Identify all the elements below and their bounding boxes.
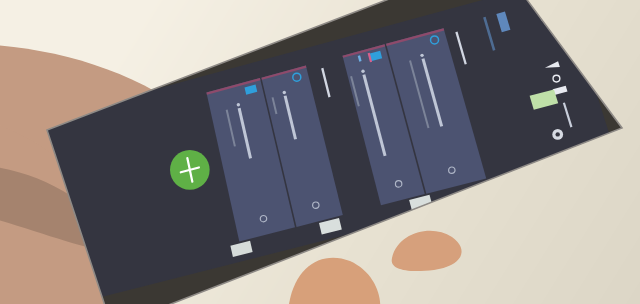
button[interactable]: Calendar agenda app on a phone held in a… xyxy=(0,0,640,304)
